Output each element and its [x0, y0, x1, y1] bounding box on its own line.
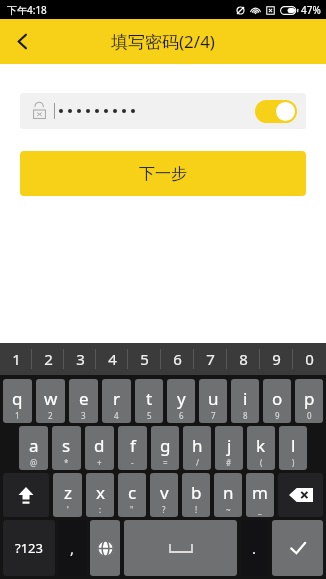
staticText: c: [128, 481, 137, 504]
button[interactable]: Show password: [255, 100, 297, 123]
button[interactable]: c: [118, 473, 146, 517]
staticText: a: [29, 434, 39, 457]
button[interactable]: g: [151, 426, 179, 470]
button[interactable]: h: [183, 426, 211, 470]
button[interactable]: r: [102, 379, 131, 423]
button[interactable]: 7: [194, 343, 227, 375]
button[interactable]: k: [247, 426, 275, 470]
button[interactable]: Done: [272, 520, 323, 576]
staticText: i: [243, 387, 248, 410]
button[interactable]: d: [85, 426, 114, 470]
button[interactable]: y: [167, 379, 195, 423]
button[interactable]: 3: [64, 343, 96, 375]
staticText: 47%: [301, 3, 321, 17]
staticText: @: [30, 457, 38, 468]
button[interactable]: w: [36, 379, 65, 423]
staticText: g: [160, 434, 171, 457]
staticText: 6: [173, 349, 182, 369]
staticText: *: [64, 457, 69, 468]
staticText: l: [291, 434, 296, 457]
button[interactable]: s: [52, 426, 81, 470]
staticText: 1: [15, 410, 20, 421]
button[interactable]: u: [199, 379, 227, 423]
staticText: 3: [81, 410, 86, 421]
staticText: x: [96, 481, 105, 504]
button[interactable]: 2: [32, 343, 64, 375]
staticText: y: [177, 387, 186, 410]
staticText: .: [252, 538, 257, 558]
button[interactable]: a: [19, 426, 48, 470]
staticText: s: [62, 434, 71, 457]
staticText: (: [260, 457, 263, 468]
staticText: ': [67, 504, 69, 515]
staticText: ": [130, 504, 134, 515]
button[interactable]: Change language: [90, 520, 120, 576]
button[interactable]: b: [182, 473, 210, 517]
button[interactable]: Comma: [59, 520, 86, 576]
button[interactable]: v: [150, 473, 178, 517]
button[interactable]: Back: [0, 19, 45, 64]
staticText: /: [196, 457, 199, 468]
button[interactable]: l: [279, 426, 307, 470]
button[interactable]: n: [214, 473, 242, 517]
button[interactable]: 0: [293, 343, 326, 375]
button[interactable]: 1: [0, 343, 32, 375]
button[interactable]: Shift: [3, 473, 49, 517]
staticText: ,: [70, 538, 75, 558]
staticText: h: [192, 434, 203, 457]
staticText: r: [113, 387, 121, 410]
staticText: q: [12, 387, 23, 410]
button[interactable]: 9: [260, 343, 293, 375]
button[interactable]: 下一步: [20, 151, 306, 196]
staticText: 8: [243, 410, 248, 421]
button[interactable]: t: [135, 379, 163, 423]
staticText: 2: [48, 410, 53, 421]
button[interactable]: e: [69, 379, 98, 423]
staticText: 4: [114, 410, 119, 421]
staticText: v: [160, 481, 169, 504]
staticText: 7: [206, 349, 215, 369]
staticText: ?: [162, 504, 166, 515]
button[interactable]: Show password: [20, 93, 306, 129]
staticText: t: [146, 387, 153, 410]
staticText: 9: [275, 410, 280, 421]
staticText: 填写密码(2/4): [111, 30, 215, 53]
staticText: _: [258, 504, 262, 515]
staticText: z: [64, 481, 72, 504]
staticText: 1: [12, 349, 21, 369]
staticText: !: [195, 504, 198, 515]
button[interactable]: o: [263, 379, 291, 423]
button[interactable]: p: [295, 379, 323, 423]
staticText: u: [208, 387, 219, 410]
button[interactable]: f: [118, 426, 147, 470]
button[interactable]: Period: [241, 520, 268, 576]
staticText: 4: [108, 349, 117, 369]
button[interactable]: Space: [124, 520, 237, 576]
button[interactable]: 6: [161, 343, 194, 375]
staticText: 0: [305, 349, 314, 369]
staticText: ~: [226, 504, 231, 515]
staticText: 0: [307, 410, 312, 421]
staticText: 8: [239, 349, 248, 369]
button[interactable]: m: [246, 473, 274, 517]
staticText: -: [131, 457, 134, 468]
button[interactable]: i: [231, 379, 259, 423]
button[interactable]: Backspace: [278, 473, 323, 517]
button[interactable]: j: [215, 426, 243, 470]
button[interactable]: q: [3, 379, 32, 423]
button[interactable]: x: [86, 473, 114, 517]
button[interactable]: 8: [227, 343, 260, 375]
staticText: 7: [211, 410, 216, 421]
button[interactable]: z: [53, 473, 82, 517]
button[interactable]: 5: [128, 343, 161, 375]
staticText: j: [227, 434, 232, 457]
staticText: o: [272, 387, 283, 410]
staticText: 下一步: [139, 164, 187, 184]
staticText: ?123: [15, 539, 43, 557]
button[interactable]: 4: [96, 343, 128, 375]
staticText: 下午4:18: [7, 3, 47, 17]
staticText: ): [292, 457, 295, 468]
staticText: e: [79, 387, 89, 410]
staticText: 6: [179, 410, 184, 421]
button[interactable]: ?123: [3, 520, 55, 576]
